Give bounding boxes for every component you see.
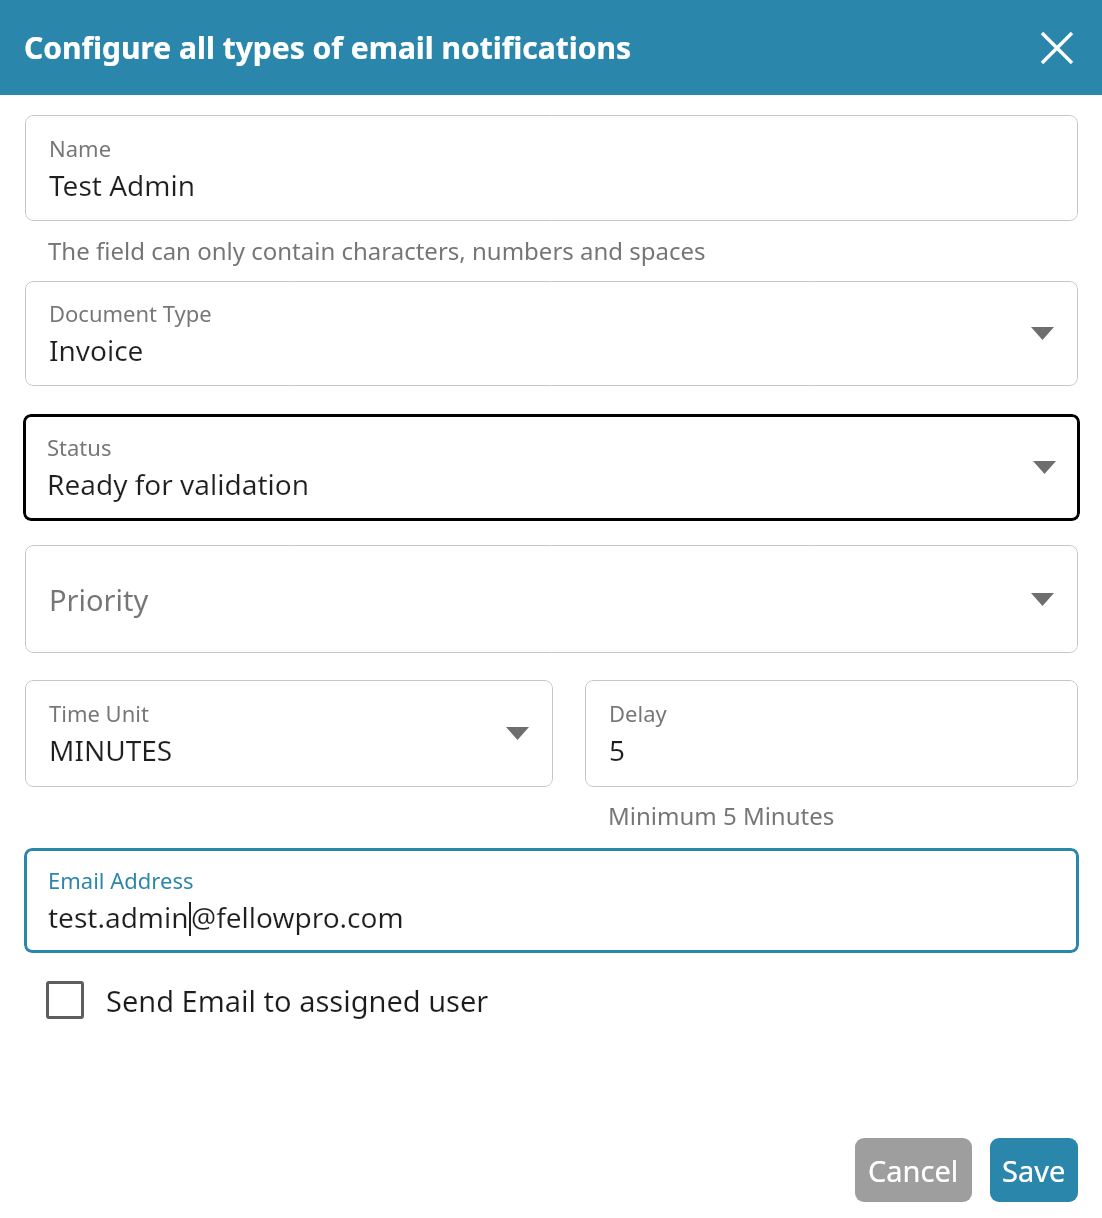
staticText: Configure all types of email notificatio… [24, 27, 632, 68]
staticText: Name [49, 133, 112, 163]
staticText: Test Admin [49, 166, 196, 204]
staticText: MINUTES [49, 731, 173, 769]
button[interactable]: Save [990, 1138, 1078, 1202]
staticText: Email Address [48, 865, 194, 895]
staticText: Send Email to assigned user [106, 981, 489, 1020]
button[interactable]: Status [23, 414, 1080, 521]
button[interactable]: Close [1030, 21, 1084, 75]
staticText: Document Type [49, 298, 212, 328]
button[interactable]: Priority [25, 545, 1078, 653]
staticText: Ready for validation [47, 465, 309, 503]
button[interactable]: Email Address [24, 848, 1079, 953]
button[interactable]: Cancel [855, 1138, 972, 1202]
button[interactable]: Document Type [25, 281, 1078, 386]
staticText: Save [1002, 1151, 1066, 1190]
staticText: Status [47, 432, 112, 462]
staticText: Priority [49, 580, 149, 619]
staticText: Cancel [868, 1151, 959, 1190]
staticText: Invoice [49, 331, 144, 369]
staticText: The field can only contain characters, n… [48, 234, 706, 267]
staticText: 5 [609, 731, 626, 769]
staticText: Minimum 5 Minutes [608, 799, 835, 832]
staticText: Delay [609, 698, 667, 728]
button[interactable]: Send Email to assigned user [40, 975, 489, 1025]
staticText: test.admin [48, 898, 189, 936]
staticText: @fellowpro.com [191, 898, 404, 936]
button[interactable]: Time Unit [25, 680, 553, 787]
button[interactable]: Name [25, 115, 1078, 221]
staticText: Time Unit [49, 698, 149, 728]
button[interactable]: Delay [585, 680, 1078, 787]
